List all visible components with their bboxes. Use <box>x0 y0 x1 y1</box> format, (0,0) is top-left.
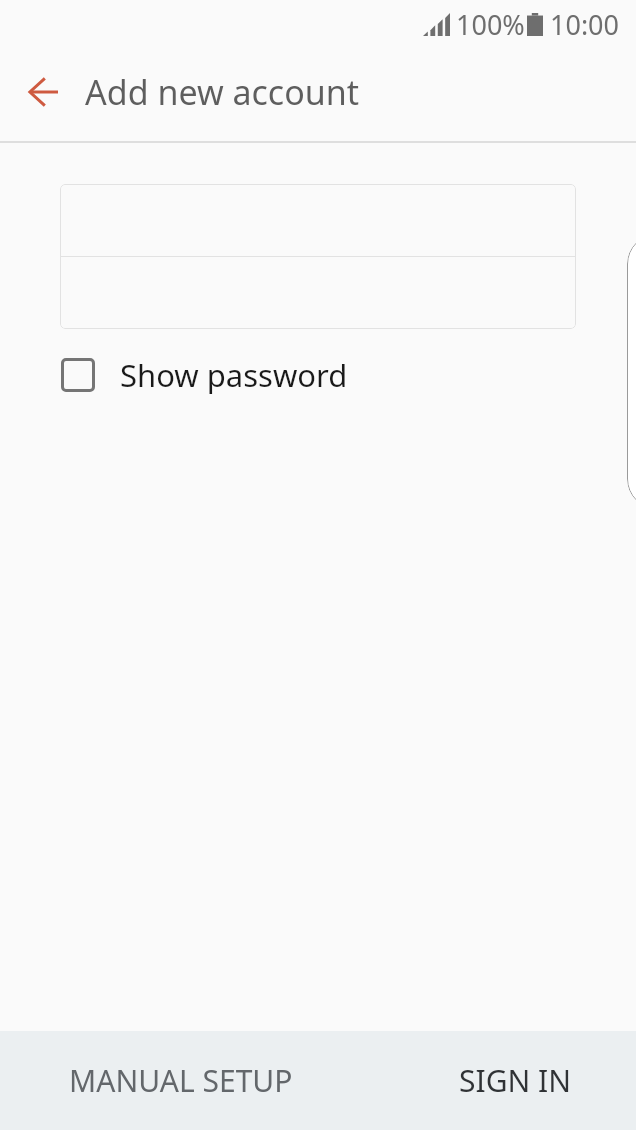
button[interactable]: SIGN IN <box>395 1031 636 1130</box>
staticText: SIGN IN <box>459 1060 572 1101</box>
button[interactable] <box>60 184 576 256</box>
staticText: 100% <box>456 6 525 43</box>
button[interactable]: Show password <box>61 354 348 396</box>
button[interactable]: Navigate up <box>12 69 74 115</box>
button[interactable]: MANUAL SETUP <box>0 1031 362 1130</box>
staticText: 10:00 <box>550 6 620 43</box>
staticText: Show password <box>120 354 348 396</box>
staticText: Add new account <box>85 69 360 115</box>
button[interactable] <box>60 257 576 329</box>
staticText: MANUAL SETUP <box>69 1060 293 1101</box>
